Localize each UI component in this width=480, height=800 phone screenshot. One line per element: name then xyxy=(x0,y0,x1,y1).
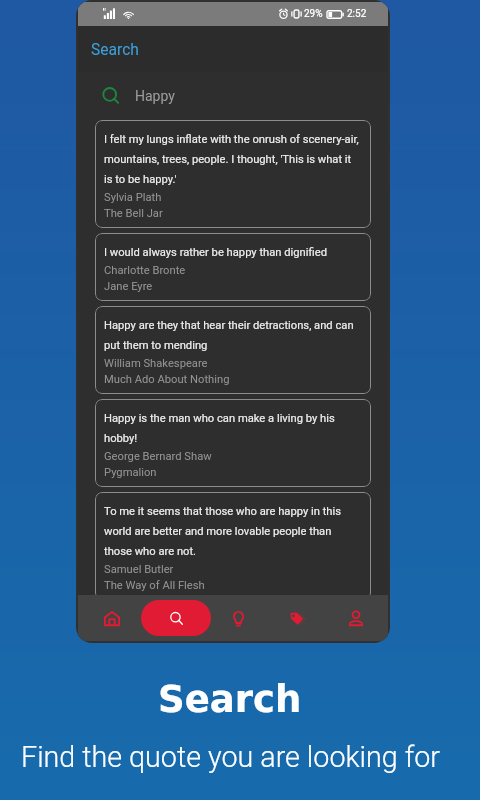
button[interactable]: Happy xyxy=(78,72,388,120)
button[interactable]: Profile xyxy=(339,595,373,641)
staticText: To me it seems that those who are happy … xyxy=(104,499,362,558)
staticText: Samuel Butler xyxy=(104,560,174,576)
staticText: Jane Eyre xyxy=(104,277,153,293)
staticText: Sylvia Plath xyxy=(104,188,162,204)
button[interactable]: Happy is the man who can make a living b… xyxy=(95,399,371,487)
staticText: Charlotte Bronte xyxy=(104,261,186,277)
staticText: 2:52 xyxy=(347,8,367,20)
staticText: Search xyxy=(91,41,139,59)
button[interactable]: Ideas xyxy=(221,595,255,641)
button[interactable]: Happy are they that hear their detractio… xyxy=(95,306,371,394)
button[interactable]: Home xyxy=(95,595,129,641)
staticText: The Bell Jar xyxy=(104,204,163,220)
staticText: Pygmalion xyxy=(104,463,157,479)
staticText: William Shakespeare xyxy=(104,354,208,370)
button[interactable]: To me it seems that those who are happy … xyxy=(95,492,371,600)
staticText: Search xyxy=(158,678,302,721)
staticText: Much Ado About Nothing xyxy=(104,370,230,386)
staticText: The Way of All Flesh xyxy=(104,576,205,592)
button[interactable]: Search xyxy=(141,600,211,636)
staticText: Happy is the man who can make a living b… xyxy=(104,406,362,445)
staticText: Happy are they that hear their detractio… xyxy=(104,313,362,352)
staticText: Happy xyxy=(135,88,175,104)
staticText: George Bernard Shaw xyxy=(104,447,212,463)
button[interactable]: I would always rather be happy than dign… xyxy=(95,233,371,301)
button[interactable]: I felt my lungs inflate with the onrush … xyxy=(95,120,371,228)
button[interactable]: Tags xyxy=(280,595,314,641)
staticText: I felt my lungs inflate with the onrush … xyxy=(104,127,362,186)
staticText: I would always rather be happy than dign… xyxy=(104,240,327,259)
staticText: Find the quote you are looking for xyxy=(21,740,440,774)
staticText: 29% xyxy=(304,8,323,20)
